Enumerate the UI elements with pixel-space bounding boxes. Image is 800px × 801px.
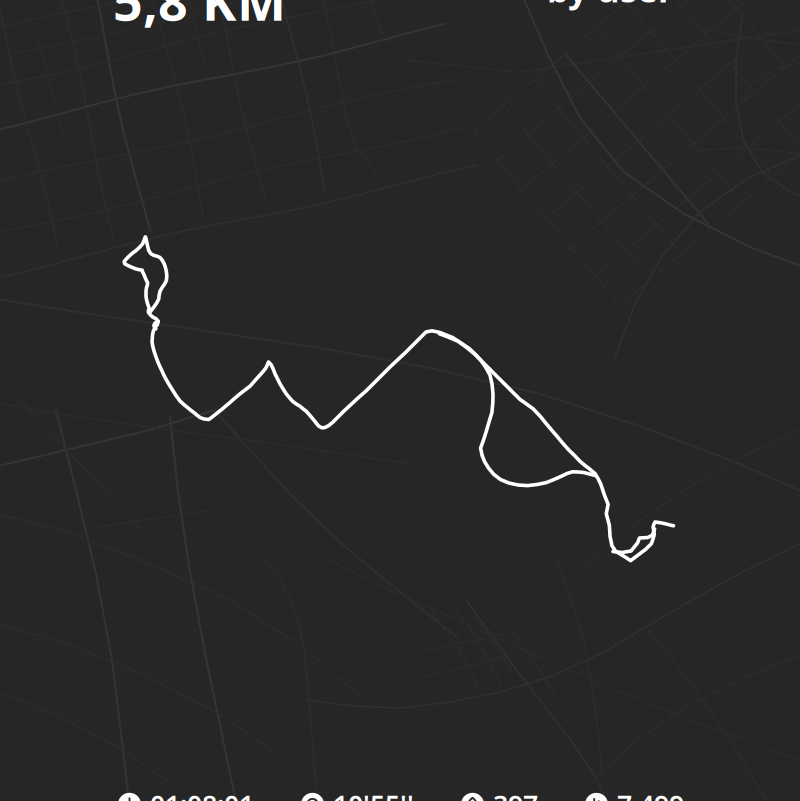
button[interactable]: Duration <box>118 787 254 801</box>
staticText: 01:08:01 <box>150 787 254 801</box>
staticText: 7.499 <box>617 787 684 801</box>
button[interactable]: Steps <box>585 787 684 801</box>
button[interactable]: Average pace <box>301 787 414 801</box>
staticText: by user <box>547 0 673 12</box>
staticText: 5,8 KM <box>113 0 286 35</box>
staticText: 10'55'' <box>333 787 414 801</box>
button[interactable]: Calories <box>461 787 538 801</box>
staticText: 397 <box>493 787 538 801</box>
